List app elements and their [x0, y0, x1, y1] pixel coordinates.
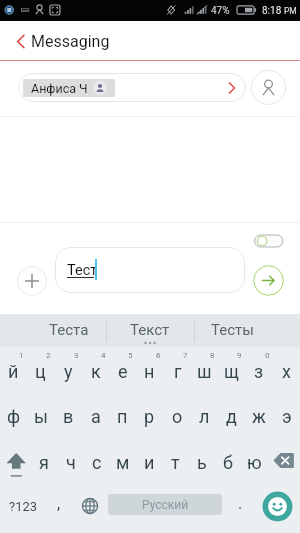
staticText: з: [254, 361, 264, 382]
staticText: 2: [46, 351, 51, 360]
staticText: д: [226, 406, 237, 427]
staticText: ю: [247, 452, 262, 473]
staticText: о: [172, 406, 183, 427]
button[interactable]: в: [55, 394, 82, 439]
button[interactable]: Switch language: [76, 486, 104, 526]
button[interactable]: Русский: [108, 494, 222, 515]
button[interactable]: Тесты: [188, 314, 276, 347]
staticText: 7: [183, 351, 188, 360]
staticText: г: [174, 361, 182, 382]
staticText: 8:18: [262, 5, 282, 17]
staticText: э: [282, 406, 292, 427]
staticText: п: [117, 406, 128, 427]
staticText: и: [144, 452, 155, 473]
button[interactable]: ф: [0, 394, 27, 439]
staticText: б: [223, 452, 233, 473]
staticText: Тесты: [211, 321, 254, 339]
staticText: т: [171, 452, 180, 473]
staticText: н: [144, 361, 155, 382]
button[interactable]: д: [218, 394, 245, 439]
button[interactable]: ч: [58, 440, 84, 485]
button[interactable]: я: [31, 440, 57, 485]
button[interactable]: е: [109, 349, 136, 394]
staticText: ,: [57, 494, 61, 513]
button[interactable]: Back: [9, 29, 33, 53]
staticText: ?123: [9, 499, 38, 514]
staticText: ч: [66, 452, 76, 473]
button[interactable]: ш: [191, 349, 218, 394]
staticText: Тест: [67, 262, 98, 279]
staticText: е: [118, 361, 128, 382]
staticText: й: [8, 361, 19, 382]
button[interactable]: Анфиса Ч: [18, 73, 246, 102]
button[interactable]: Теста: [25, 314, 113, 347]
staticText: 9: [237, 351, 242, 360]
button[interactable]: н: [136, 349, 163, 394]
staticText: у: [64, 361, 73, 382]
staticText: ы: [34, 406, 48, 427]
button[interactable]: ь: [189, 440, 215, 485]
staticText: Теста: [49, 321, 89, 339]
staticText: а: [91, 406, 101, 427]
staticText: 8: [210, 351, 215, 360]
staticText: л: [199, 406, 210, 427]
staticText: х: [282, 361, 291, 382]
button[interactable]: о: [164, 394, 191, 439]
button[interactable]: Choose contact: [251, 70, 286, 105]
button[interactable]: ?123: [4, 486, 42, 526]
button[interactable]: р: [136, 394, 163, 439]
staticText: р: [144, 406, 155, 427]
button[interactable]: з: [245, 349, 272, 394]
staticText: в: [63, 406, 74, 427]
staticText: ж: [252, 406, 266, 427]
staticText: ш: [197, 361, 212, 382]
button[interactable]: м: [110, 440, 136, 485]
staticText: 4: [101, 351, 106, 360]
button[interactable]: ы: [27, 394, 54, 439]
button[interactable]: .: [228, 486, 252, 526]
button[interactable]: т: [162, 440, 188, 485]
button[interactable]: ю: [241, 440, 267, 485]
button[interactable]: Тест: [55, 247, 245, 293]
staticText: PM: [284, 6, 297, 16]
button[interactable]: ж: [245, 394, 272, 439]
staticText: с: [92, 452, 102, 473]
staticText: 3: [74, 351, 79, 360]
button[interactable]: Add attachment: [17, 266, 47, 296]
button[interactable]: Send: [253, 265, 284, 296]
button[interactable]: п: [109, 394, 136, 439]
button[interactable]: х: [273, 349, 300, 394]
button[interactable]: и: [136, 440, 162, 485]
staticText: Messaging: [31, 32, 110, 51]
staticText: м: [116, 452, 130, 473]
button[interactable]: к: [82, 349, 109, 394]
button[interactable]: г: [164, 349, 191, 394]
staticText: я: [39, 452, 49, 473]
staticText: 1: [19, 351, 24, 360]
staticText: Текст: [130, 321, 170, 339]
staticText: Русский: [142, 498, 189, 512]
button[interactable]: Текст: [106, 314, 194, 347]
staticText: щ: [224, 361, 239, 382]
button[interactable]: й: [0, 349, 27, 394]
button[interactable]: Shift: [0, 439, 32, 485]
staticText: Анфиса Ч: [31, 81, 88, 96]
button[interactable]: Emoji: [262, 491, 293, 522]
button[interactable]: б: [215, 440, 241, 485]
staticText: 47%: [211, 5, 230, 17]
button[interactable]: ,: [46, 486, 72, 526]
button[interactable]: а: [82, 394, 109, 439]
staticText: .: [238, 494, 243, 513]
button[interactable]: щ: [218, 349, 245, 394]
staticText: ь: [197, 452, 207, 473]
button[interactable]: ц: [27, 349, 54, 394]
staticText: 5: [128, 351, 133, 360]
button[interactable]: Backspace: [270, 449, 298, 475]
button[interactable]: э: [273, 394, 300, 439]
button[interactable]: Delivery report toggle: [250, 230, 288, 252]
staticText: 6: [156, 351, 161, 360]
button[interactable]: л: [191, 394, 218, 439]
button[interactable]: с: [84, 440, 110, 485]
button[interactable]: у: [55, 349, 82, 394]
staticText: 0: [265, 351, 270, 360]
